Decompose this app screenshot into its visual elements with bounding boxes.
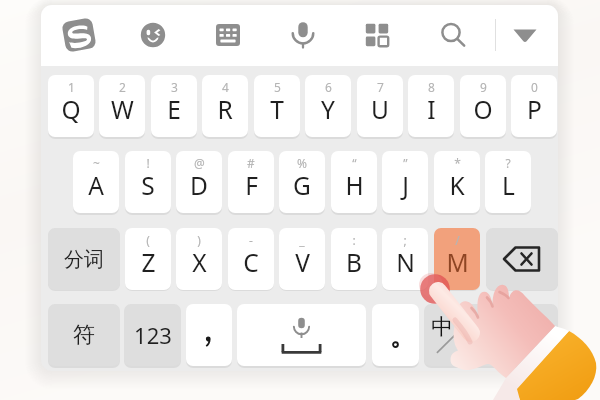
staticText: !	[146, 155, 150, 171]
button[interactable]: 0	[511, 75, 557, 137]
button[interactable]: ;	[382, 228, 428, 290]
button[interactable]: !	[125, 151, 171, 213]
button[interactable]: ~	[73, 151, 119, 213]
button[interactable]: #	[228, 151, 274, 213]
staticText: ?	[505, 155, 511, 171]
staticText: U	[371, 93, 389, 126]
staticText: 中	[431, 313, 453, 341]
button[interactable]: 9	[460, 75, 506, 137]
staticText: Q	[61, 93, 81, 126]
staticText: O	[473, 93, 493, 126]
staticText: P	[527, 93, 542, 126]
button[interactable]: _	[279, 228, 325, 290]
button[interactable]: 4	[202, 75, 248, 137]
staticText: 3	[171, 79, 178, 95]
staticText: Y	[321, 93, 335, 126]
button[interactable]: 1	[48, 75, 94, 137]
button[interactable]: Switch Chinese English	[424, 304, 558, 366]
staticText: ”	[403, 155, 408, 171]
button[interactable]: 分词	[48, 228, 120, 290]
staticText: V	[295, 246, 310, 279]
staticText: 8	[428, 79, 435, 95]
staticText: M	[446, 246, 469, 279]
staticText: 6	[325, 79, 332, 95]
staticText: -	[249, 232, 253, 248]
button[interactable]: 5	[254, 75, 300, 137]
staticText: X	[192, 246, 207, 279]
staticText: C	[243, 246, 259, 279]
staticText: B	[346, 246, 362, 279]
button[interactable]: “	[331, 151, 377, 213]
button[interactable]: Space	[237, 304, 366, 366]
button[interactable]: 123	[124, 304, 181, 366]
staticText: N	[396, 246, 415, 279]
button[interactable]: Hide keyboard	[501, 11, 549, 59]
button[interactable]: %	[279, 151, 325, 213]
staticText: L	[502, 169, 515, 202]
staticText: G	[293, 169, 311, 202]
button[interactable]: 符	[48, 304, 120, 366]
button[interactable]: /	[434, 228, 480, 290]
button[interactable]: )	[176, 228, 222, 290]
button[interactable]: ?	[485, 151, 531, 213]
staticText: W	[111, 93, 134, 126]
staticText: 符	[73, 321, 95, 349]
staticText: @	[194, 155, 205, 171]
staticText: K	[449, 169, 465, 202]
button[interactable]: 8	[408, 75, 454, 137]
staticText: )	[197, 232, 201, 248]
button[interactable]: Period	[372, 304, 419, 366]
button[interactable]: Keyboard layout	[204, 11, 252, 59]
button[interactable]: 6	[305, 75, 351, 137]
staticText: 英	[456, 337, 467, 350]
button[interactable]: More tools	[353, 11, 401, 59]
button[interactable]: Backspace	[486, 228, 558, 290]
staticText: ;	[403, 232, 407, 248]
staticText: 1	[68, 79, 75, 95]
staticText: %	[297, 155, 307, 171]
staticText: *	[454, 155, 461, 171]
staticText: 123	[134, 320, 172, 350]
button[interactable]: Search	[429, 11, 477, 59]
button[interactable]: ”	[382, 151, 428, 213]
button[interactable]: (	[125, 228, 171, 290]
staticText: 7	[377, 79, 384, 95]
staticText: :	[352, 232, 356, 248]
button[interactable]: Sogou input settings	[55, 11, 103, 59]
staticText: ~	[93, 155, 100, 171]
staticText: F	[245, 169, 258, 202]
button[interactable]: 7	[357, 75, 403, 137]
button[interactable]: *	[434, 151, 480, 213]
staticText: (	[146, 232, 150, 248]
staticText: T	[270, 93, 284, 126]
staticText: “	[352, 155, 357, 171]
staticText: H	[345, 169, 364, 202]
staticText: #	[247, 155, 255, 171]
button[interactable]: 2	[99, 75, 145, 137]
staticText: /	[455, 232, 460, 248]
staticText: 0	[531, 79, 538, 95]
staticText: D	[190, 169, 208, 202]
button[interactable]: Voice input	[279, 11, 327, 59]
staticText: 4	[222, 79, 229, 95]
button[interactable]: @	[176, 151, 222, 213]
staticText: A	[88, 169, 104, 202]
staticText: Z	[141, 246, 156, 279]
staticText: J	[402, 169, 409, 202]
staticText: 2	[119, 79, 126, 95]
staticText: 5	[274, 79, 281, 95]
button[interactable]: :	[331, 228, 377, 290]
staticText: R	[217, 93, 233, 126]
button[interactable]: 3	[151, 75, 197, 137]
staticText: 9	[480, 79, 487, 95]
staticText: I	[427, 93, 436, 126]
staticText: _	[299, 232, 305, 248]
button[interactable]: Comma	[186, 304, 232, 366]
staticText: 分词	[64, 247, 104, 272]
button[interactable]: Emoji	[129, 11, 177, 59]
staticText: E	[167, 93, 181, 126]
button[interactable]: -	[228, 228, 274, 290]
staticText: S	[141, 169, 155, 202]
